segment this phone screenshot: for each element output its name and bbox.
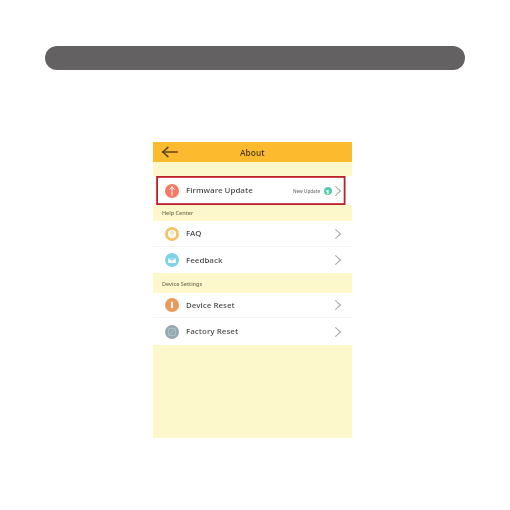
button[interactable]: Back	[158, 142, 182, 162]
button[interactable]: Firmware Update	[153, 176, 352, 205]
staticText: Help Center	[162, 209, 194, 216]
staticText: 1	[326, 188, 330, 195]
staticText: FAQ	[186, 228, 202, 239]
button[interactable]: FAQ	[153, 221, 352, 246]
staticText: Device Reset	[186, 300, 235, 311]
staticText: Feedback	[186, 255, 223, 266]
staticText: About	[240, 147, 265, 158]
button[interactable]: Device Reset	[153, 293, 352, 317]
staticText: New Update	[293, 188, 321, 194]
staticText: Device Settings	[162, 280, 203, 287]
staticText: Firmware Update	[186, 185, 253, 196]
button[interactable]: Factory Reset	[153, 318, 352, 345]
button[interactable]: Feedback	[153, 247, 352, 273]
staticText: Factory Reset	[186, 326, 239, 337]
